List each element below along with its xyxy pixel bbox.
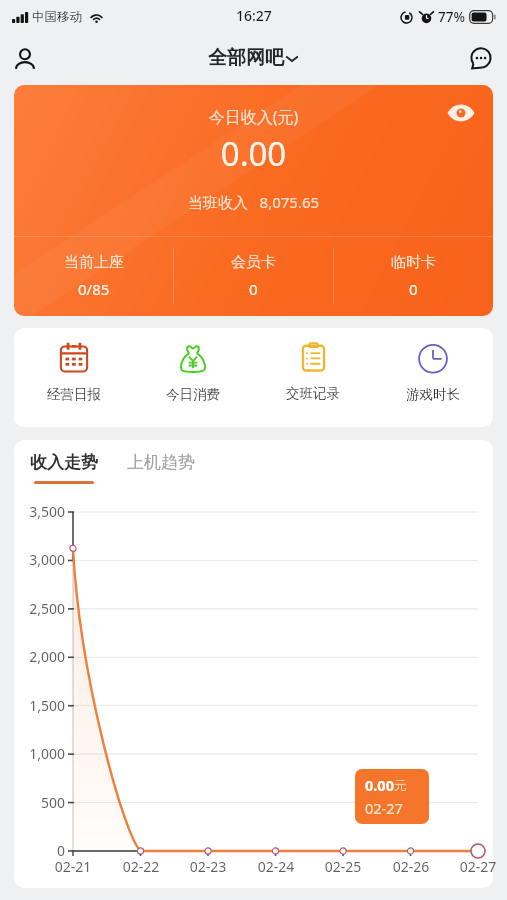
button[interactable]: 今日收入(元) bbox=[14, 85, 493, 316]
staticText: 500 bbox=[14, 793, 65, 812]
staticText: 1,000 bbox=[14, 744, 65, 763]
staticText: 77% bbox=[438, 8, 465, 26]
button[interactable]: 游戏时长 bbox=[373, 328, 493, 427]
staticText: 3,000 bbox=[14, 550, 65, 569]
staticText: 会员卡 bbox=[231, 253, 276, 272]
staticText: 0 bbox=[249, 279, 258, 299]
staticText: 02-24 bbox=[250, 857, 302, 876]
staticText: 0 bbox=[409, 279, 418, 299]
staticText: 02-27 bbox=[365, 798, 403, 818]
staticText: 交班记录 bbox=[286, 385, 340, 402]
staticText: 当前上座 bbox=[64, 253, 124, 272]
staticText: 全部网吧 bbox=[208, 46, 284, 70]
staticText: 02-25 bbox=[317, 857, 369, 876]
button[interactable]: 经营日报 bbox=[14, 328, 133, 427]
button[interactable]: Toggle income visibility bbox=[446, 98, 476, 128]
button[interactable]: 收入走势 bbox=[30, 452, 98, 484]
staticText: 临时卡 bbox=[391, 253, 436, 272]
staticText: 元 bbox=[394, 778, 407, 794]
staticText: 02-22 bbox=[115, 857, 167, 876]
staticText: 今日收入(元) bbox=[14, 106, 493, 128]
staticText: 16:27 bbox=[236, 6, 272, 25]
button[interactable]: 交班记录 bbox=[253, 328, 373, 427]
button[interactable]: Messages bbox=[461, 39, 501, 79]
staticText: 02-23 bbox=[182, 857, 234, 876]
staticText: 经营日报 bbox=[47, 386, 101, 403]
staticText: 上机趋势 bbox=[127, 452, 195, 473]
staticText: 0.00 bbox=[365, 775, 394, 795]
staticText: 游戏时长 bbox=[406, 386, 460, 403]
staticText: 3,500 bbox=[14, 502, 65, 521]
staticText: 02-21 bbox=[47, 857, 99, 876]
button[interactable]: 今日消费 bbox=[133, 328, 253, 427]
button[interactable]: 上机趋势 bbox=[127, 452, 195, 484]
staticText: 0/85 bbox=[78, 279, 110, 299]
staticText: 02-26 bbox=[385, 857, 437, 876]
staticText: 0.00 bbox=[14, 131, 493, 176]
button[interactable]: Account bbox=[5, 39, 45, 79]
button[interactable]: 全部网吧 bbox=[208, 46, 299, 70]
staticText: 2,500 bbox=[14, 599, 65, 618]
staticText: 当班收入 8,075.65 bbox=[14, 192, 493, 212]
staticText: 02-27 bbox=[452, 857, 504, 876]
staticText: 1,500 bbox=[14, 696, 65, 715]
button[interactable]: 临时卡 bbox=[334, 253, 493, 299]
button[interactable]: 会员卡 bbox=[174, 253, 333, 299]
staticText: 中国移动 bbox=[32, 9, 82, 25]
button[interactable]: 0.00 bbox=[365, 769, 429, 824]
button[interactable]: 当前上座 bbox=[14, 253, 173, 299]
staticText: 2,000 bbox=[14, 647, 65, 666]
staticText: 今日消费 bbox=[166, 386, 220, 403]
staticText: 收入走势 bbox=[30, 452, 98, 473]
staticText: 0 bbox=[14, 841, 65, 860]
